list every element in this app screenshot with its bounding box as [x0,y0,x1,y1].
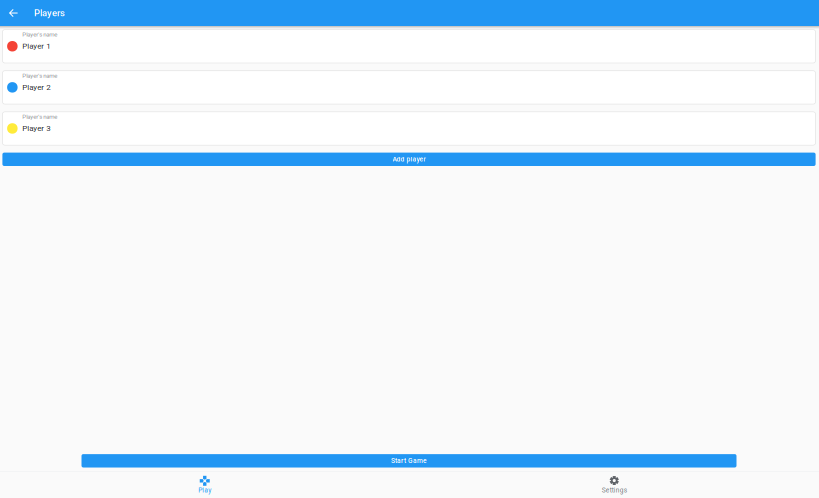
button[interactable]: Back [0,0,25,26]
staticText: Play [198,486,211,494]
staticText: Start Game [391,457,427,465]
button[interactable]: Add player [2,153,816,166]
button[interactable]: Player's name [2,112,816,145]
staticText: Player 3 [22,124,50,133]
staticText: Settings [602,486,627,494]
staticText: Players [34,7,65,18]
button[interactable]: Player's name [2,30,816,63]
staticText: Player's name [22,113,57,120]
staticText: Player 1 [22,41,50,51]
staticText: Add player [392,155,425,163]
button[interactable]: Player's name [2,71,816,104]
staticText: Player's name [22,72,57,79]
staticText: Player 2 [22,82,50,92]
button[interactable]: Play [0,471,409,498]
staticText: Player's name [22,31,57,38]
button[interactable]: Settings [409,471,819,498]
button[interactable]: Start Game [81,454,736,467]
